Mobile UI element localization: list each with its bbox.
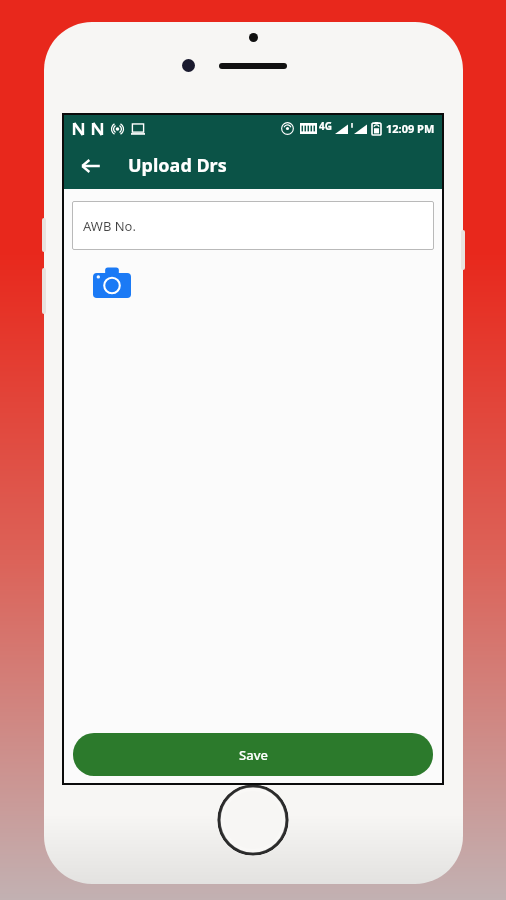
staticText: AWB No. bbox=[83, 217, 136, 235]
staticText: 4G bbox=[319, 119, 332, 133]
button[interactable]: Take photo bbox=[93, 266, 131, 298]
staticText: 12:09 PM bbox=[386, 121, 435, 136]
button[interactable]: AWB No. bbox=[72, 201, 434, 250]
staticText: Upload Drs bbox=[128, 153, 227, 178]
staticText: Save bbox=[239, 746, 268, 764]
button[interactable]: Save bbox=[73, 733, 433, 776]
button[interactable]: Back bbox=[70, 145, 112, 187]
